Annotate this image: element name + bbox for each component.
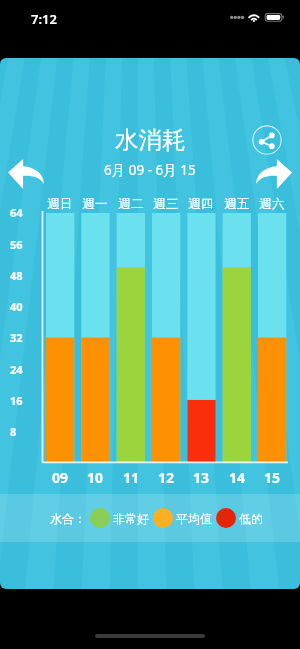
staticText: 48 <box>10 268 23 283</box>
staticText: 16 <box>10 393 23 408</box>
staticText: 40 <box>10 299 23 314</box>
button[interactable]: Share <box>252 125 282 155</box>
staticText: 週五 <box>215 196 259 212</box>
staticText: 8 <box>10 424 17 439</box>
button[interactable]: Previous week <box>8 159 44 189</box>
staticText: 週六 <box>250 196 294 212</box>
staticText: 24 <box>10 362 23 377</box>
staticText: 平均值 <box>176 511 212 526</box>
staticText: 10 <box>73 468 117 487</box>
staticText: 13 <box>179 468 223 487</box>
staticText: 7:12 <box>31 10 57 28</box>
staticText: 6月 09 - 6月 15 <box>104 161 196 179</box>
staticText: 11 <box>109 468 153 487</box>
staticText: 週二 <box>109 196 153 212</box>
staticText: 非常好 <box>113 511 149 526</box>
staticText: 32 <box>10 330 23 345</box>
staticText: 09 <box>38 468 82 487</box>
button[interactable]: Next week <box>256 159 292 189</box>
staticText: 56 <box>10 237 23 252</box>
staticText: 64 <box>10 205 23 220</box>
staticText: 週一 <box>73 196 117 212</box>
staticText: 低的 <box>239 511 263 526</box>
staticText: 14 <box>215 468 259 487</box>
staticText: 15 <box>250 468 294 487</box>
staticText: 水消耗 <box>115 125 186 155</box>
staticText: 水合： <box>50 511 86 526</box>
staticText: 週三 <box>144 196 188 212</box>
staticText: 週日 <box>38 196 82 212</box>
staticText: 12 <box>144 468 188 487</box>
staticText: 週四 <box>179 196 223 212</box>
